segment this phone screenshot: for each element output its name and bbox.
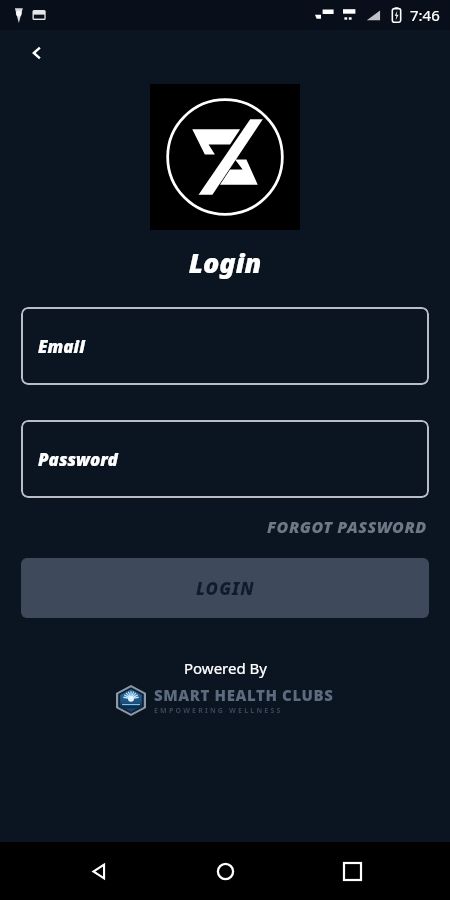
staticText: FORGOT PASSWORD [267, 516, 427, 538]
button[interactable]: Password [21, 420, 429, 498]
staticText: LOGIN [196, 577, 255, 600]
button[interactable]: LOGIN [21, 558, 429, 618]
staticText: Password [38, 448, 118, 471]
staticText: SMART HEALTH CLUBS [154, 685, 334, 705]
staticText: 7:46 [410, 5, 440, 25]
button[interactable]: Back [71, 843, 127, 899]
button[interactable]: Home [197, 843, 253, 899]
staticText: EMPOWERING WELLNESS [154, 706, 283, 716]
staticText: Email [38, 335, 85, 358]
button[interactable]: Email [21, 307, 429, 385]
button[interactable]: Recent apps [324, 843, 380, 899]
button[interactable]: Back [20, 36, 54, 70]
button[interactable]: FORGOT PASSWORD [265, 510, 429, 544]
staticText: Login [0, 244, 450, 281]
staticText: Powered By [184, 658, 267, 678]
